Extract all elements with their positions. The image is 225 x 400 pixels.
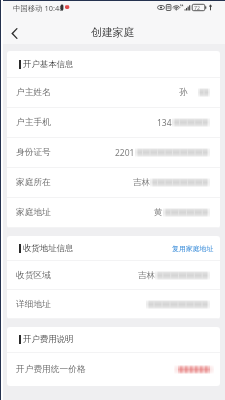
staticText: 开户基本信息	[23, 59, 74, 70]
staticText: 家庭所在	[16, 177, 51, 188]
staticText: 2201	[115, 147, 135, 159]
staticText: 吉林	[138, 270, 155, 281]
staticText: 身份证号	[16, 147, 51, 158]
staticText: 134	[157, 117, 172, 129]
button[interactable]: 开户费用统一价格	[7, 353, 220, 386]
staticText: 收货地址信息	[23, 243, 74, 254]
button[interactable]: 家庭地址	[7, 198, 220, 227]
button[interactable]: 收货区域	[7, 261, 220, 289]
staticText: 72	[194, 4, 200, 11]
staticText: 吉林	[133, 177, 150, 188]
staticText: 黄	[154, 207, 163, 218]
staticText: 孙	[179, 87, 188, 98]
staticText: 开户费用统一价格	[16, 364, 86, 375]
button[interactable]: 户主姓名	[7, 78, 220, 107]
button[interactable]: 户主手机	[7, 108, 220, 137]
staticText: 户主姓名	[16, 87, 51, 98]
staticText: 创建家庭	[91, 26, 135, 40]
staticText: 详细地址	[16, 299, 51, 310]
staticText: 收货区域	[16, 270, 51, 281]
button[interactable]: Back	[0, 19, 28, 47]
button[interactable]: 详细地址	[7, 290, 220, 318]
staticText: 中国移动 10:48	[13, 3, 64, 13]
staticText: 开户费用说明	[23, 334, 74, 345]
button[interactable]: 家庭所在	[7, 168, 220, 197]
staticText: 户主手机	[16, 117, 51, 128]
button[interactable]: 身份证号	[7, 138, 220, 167]
button[interactable]: 复用家庭地址	[164, 239, 220, 258]
staticText: 复用家庭地址	[172, 244, 214, 253]
staticText: 家庭地址	[16, 207, 51, 218]
